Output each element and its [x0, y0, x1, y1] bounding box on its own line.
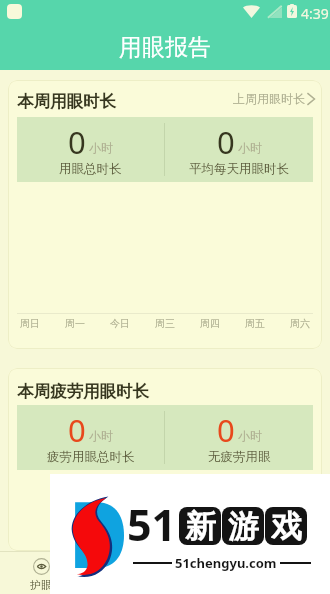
staticText: 0 — [68, 409, 86, 451]
staticText: 戏 — [271, 507, 302, 545]
staticText: 本周用眼时长 — [17, 91, 116, 112]
staticText: 0 — [68, 121, 86, 163]
staticText: 周五 — [245, 317, 265, 330]
staticText: 0 — [217, 121, 235, 163]
staticText: 小时 — [238, 428, 262, 443]
staticText: 小时 — [238, 140, 262, 155]
staticText: 周四 — [200, 317, 220, 330]
staticText: 0 — [217, 409, 235, 451]
staticText: 护眼 — [30, 578, 52, 592]
staticText: 用眼总时长 — [59, 161, 122, 177]
staticText: 周日 — [20, 317, 40, 330]
staticText: 小时 — [89, 428, 113, 443]
button[interactable]: 上周用眼时长 — [233, 91, 316, 106]
staticText: 4:39 — [301, 4, 329, 23]
staticText: 周三 — [155, 317, 175, 330]
staticText: 本周疲劳用眼时长 — [17, 381, 149, 402]
staticText: 平均每天用眼时长 — [189, 161, 289, 177]
staticText: 小时 — [89, 140, 113, 155]
staticText: 用眼报告 — [119, 33, 211, 62]
staticText: 周六 — [290, 317, 310, 330]
button[interactable]: 训练 — [164, 551, 247, 594]
staticText: 疲劳用眼总时长 — [47, 449, 135, 465]
button[interactable]: 我的 — [247, 551, 330, 594]
button[interactable]: 报告 — [82, 551, 164, 594]
staticText: 今日 — [110, 317, 130, 330]
staticText: 上周用眼时长 — [233, 91, 305, 106]
staticText: 51chengyu.com — [175, 554, 277, 572]
staticText: 无疲劳用眼 — [208, 449, 271, 465]
staticText: 51 — [127, 495, 177, 554]
staticText: 周一 — [65, 317, 85, 330]
staticText: 游 — [228, 507, 259, 545]
staticText: 新 — [185, 507, 216, 545]
button[interactable]: 护眼 — [0, 551, 82, 594]
